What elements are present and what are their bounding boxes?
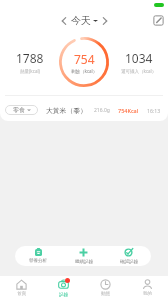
button[interactable]: 零食: [0, 103, 168, 117]
staticText: 繼續記錄: [75, 259, 93, 265]
staticText: 754: [74, 51, 95, 67]
staticText: 首頁: [17, 291, 26, 297]
staticText: 剩餘（kcal）: [71, 68, 98, 74]
staticText: 16:13: [147, 107, 161, 114]
staticText: 1034: [125, 50, 153, 66]
button[interactable]: 確認記錄: [106, 246, 151, 266]
staticText: 大黃米（黍）: [46, 106, 87, 115]
button[interactable]: Next day: [99, 15, 111, 27]
button[interactable]: 我的: [126, 276, 168, 300]
staticText: 1788: [16, 50, 44, 66]
staticText: 還可攝入（kcal）: [121, 68, 157, 74]
button[interactable]: 首頁: [0, 276, 42, 300]
button[interactable]: 今天: [71, 14, 98, 27]
staticText: 754Kcal: [118, 107, 139, 114]
staticText: 動態: [101, 291, 110, 297]
staticText: 營養分析: [29, 258, 47, 264]
staticText: 確認記錄: [120, 259, 138, 265]
staticText: 零食: [13, 106, 25, 114]
button[interactable]: 動態: [84, 276, 126, 300]
button[interactable]: Previous day: [58, 15, 70, 27]
button[interactable]: 營養分析: [15, 246, 61, 266]
staticText: 216.0g: [94, 107, 110, 114]
button[interactable]: 記錄: [42, 276, 84, 300]
staticText: 我的: [143, 291, 152, 297]
button[interactable]: 繼續記錄: [61, 246, 106, 266]
staticText: 記錄: [59, 292, 68, 298]
button[interactable]: Edit: [153, 15, 164, 26]
staticText: 今天: [71, 14, 91, 27]
staticText: 熱量(kcal): [20, 68, 40, 74]
